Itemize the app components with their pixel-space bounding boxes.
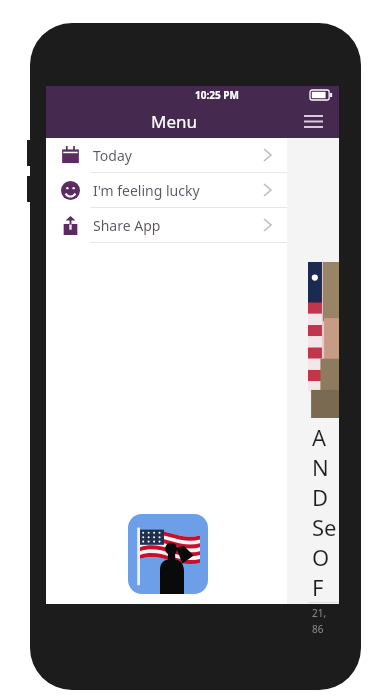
staticText: D — [312, 482, 329, 512]
staticText: 10:25 PM — [195, 88, 239, 102]
button[interactable]: I'm feeling lucky — [46, 173, 287, 208]
staticText: Se — [312, 512, 337, 542]
staticText: Share App — [93, 216, 161, 235]
staticText: I'm feeling lucky — [93, 181, 200, 200]
staticText: 21, — [312, 606, 327, 620]
button[interactable]: App icon — [128, 514, 208, 594]
staticText: N — [312, 452, 329, 482]
staticText: F — [312, 572, 324, 602]
staticText: Today — [93, 146, 132, 165]
staticText: Menu — [151, 110, 198, 133]
staticText: 86 — [312, 622, 324, 636]
staticText: A — [312, 422, 327, 452]
staticText: O — [312, 542, 330, 572]
button[interactable]: Today — [46, 138, 287, 173]
button[interactable]: Share App — [46, 208, 287, 243]
button[interactable]: Open navigation menu — [287, 104, 339, 138]
